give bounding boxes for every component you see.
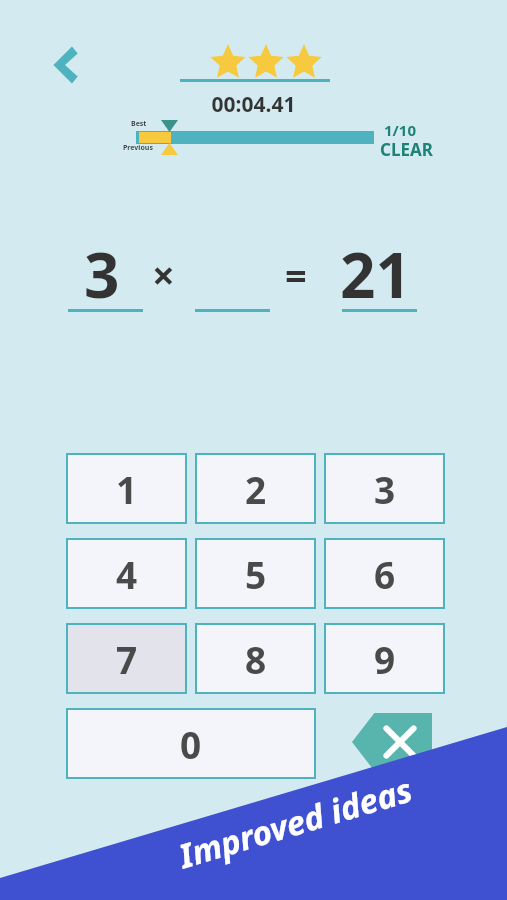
staticText: 21 <box>340 232 411 316</box>
button[interactable]: 8 <box>197 625 314 692</box>
staticText: 9 <box>374 634 396 684</box>
button[interactable]: 7 <box>68 625 185 692</box>
staticText: 6 <box>374 549 396 599</box>
staticText: 00:04.41 <box>0 90 507 119</box>
staticText: CLEAR <box>380 138 433 161</box>
button[interactable]: 6 <box>326 540 443 607</box>
staticText: 8 <box>245 634 267 684</box>
staticText: = <box>285 249 307 301</box>
button[interactable]: 5 <box>197 540 314 607</box>
staticText: 7 <box>116 634 138 684</box>
button[interactable]: 4 <box>68 540 185 607</box>
button[interactable]: Back <box>36 36 94 94</box>
staticText: Best <box>131 119 147 129</box>
staticText: 0 <box>180 719 202 769</box>
staticText: × <box>152 247 175 301</box>
button[interactable]: 2 <box>197 455 314 522</box>
button[interactable]: 9 <box>326 625 443 692</box>
staticText: 3 <box>84 232 120 316</box>
staticText: 1/10 <box>384 120 416 140</box>
staticText: 5 <box>245 549 267 599</box>
button[interactable]: 3 <box>326 455 443 522</box>
staticText: Previous <box>123 143 153 153</box>
staticText: 4 <box>116 549 138 599</box>
staticText: 3 <box>374 464 396 514</box>
button[interactable]: 1 <box>68 455 185 522</box>
staticText: 2 <box>245 464 267 514</box>
staticText: 1 <box>116 464 138 514</box>
staticText: Improved ideas <box>174 767 417 878</box>
button[interactable]: Delete <box>352 709 432 775</box>
button[interactable]: 0 <box>68 710 314 777</box>
